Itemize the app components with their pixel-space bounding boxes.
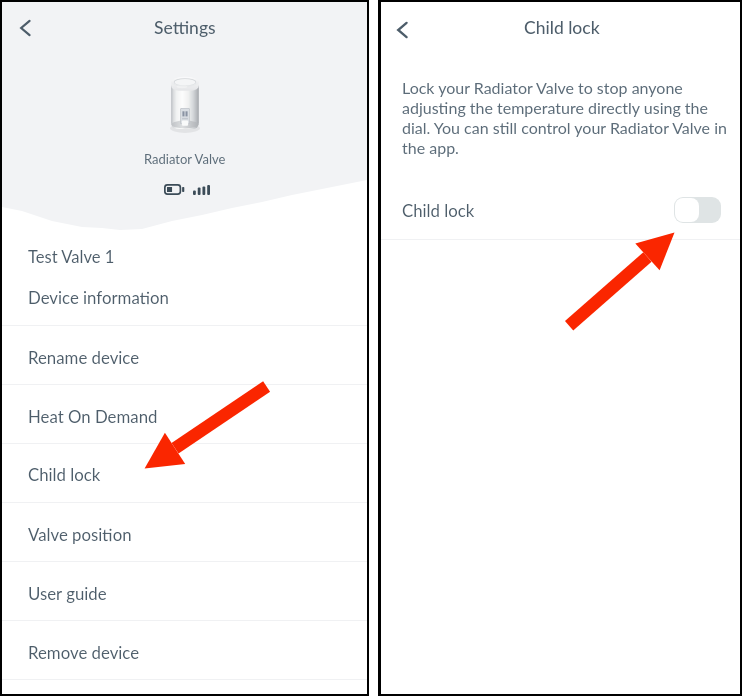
- staticText: Rename device: [28, 347, 140, 367]
- button[interactable]: Back: [9, 14, 37, 42]
- staticText: User guide: [28, 583, 107, 603]
- button[interactable]: Back: [386, 16, 414, 44]
- staticText: Heat On Demand: [28, 406, 158, 426]
- staticText: Device information: [28, 287, 169, 307]
- staticText: Remove device: [28, 642, 140, 662]
- button[interactable]: Rename device: [2, 338, 367, 376]
- button[interactable]: Device information: [2, 278, 367, 316]
- button[interactable]: User guide: [2, 574, 367, 612]
- button[interactable]: Valve position: [2, 515, 367, 553]
- staticText: Settings: [154, 17, 216, 38]
- button[interactable]: Test Valve 1: [2, 238, 367, 276]
- button[interactable]: Child lock: [2, 455, 367, 493]
- button[interactable]: Child lock: [381, 186, 740, 233]
- staticText: Valve position: [28, 524, 132, 544]
- button[interactable]: Remove device: [2, 633, 367, 671]
- staticText: Child lock: [28, 464, 101, 484]
- button[interactable]: Child lock toggle: [674, 197, 721, 223]
- staticText: Lock your Radiator Valve to stop anyone …: [402, 78, 732, 157]
- staticText: Child lock: [524, 17, 600, 38]
- button[interactable]: Heat On Demand: [2, 397, 367, 435]
- staticText: Child lock: [402, 200, 475, 220]
- staticText: Test Valve 1: [28, 247, 115, 267]
- staticText: Radiator Valve: [144, 151, 226, 167]
